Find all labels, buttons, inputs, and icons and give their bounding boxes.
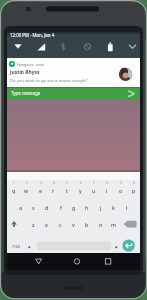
button[interactable]: ?123 (8, 242, 23, 250)
button[interactable]: u (87, 185, 100, 195)
staticText: 5 (66, 181, 68, 185)
staticText: 6 (80, 181, 82, 185)
staticText: 9 (120, 181, 122, 185)
button[interactable]: s (27, 202, 40, 212)
staticText: n (99, 221, 103, 228)
button[interactable]: q (7, 185, 20, 195)
button[interactable]: k (107, 202, 120, 212)
staticText: w (24, 187, 29, 194)
staticText: j (100, 204, 102, 211)
button[interactable] (122, 239, 135, 252)
button[interactable]: f (54, 202, 67, 212)
button[interactable]: l (120, 202, 133, 212)
button[interactable] (7, 58, 140, 87)
staticText: p (132, 187, 136, 194)
button[interactable]: j (94, 202, 107, 212)
staticText: 12:00 PM · Mon, Jan 4 (10, 32, 55, 38)
button[interactable]: i (100, 185, 113, 195)
staticText: g (72, 204, 76, 211)
staticText: y (79, 187, 82, 194)
staticText: 3 (40, 181, 42, 185)
button[interactable]: v (67, 219, 80, 229)
staticText: l (126, 204, 128, 211)
button[interactable]: o (114, 185, 127, 195)
button[interactable] (69, 255, 84, 268)
button[interactable] (7, 87, 140, 100)
button[interactable]: d (40, 202, 53, 212)
staticText: s (32, 204, 35, 211)
button[interactable]: p (127, 185, 140, 195)
staticText: z (32, 221, 35, 228)
staticText: Hangouts · now ˅ (17, 62, 46, 67)
button[interactable]: t (60, 185, 73, 195)
button[interactable]: m (107, 219, 120, 229)
button[interactable]: x (40, 219, 53, 229)
button[interactable]: e (34, 185, 47, 195)
staticText: 4 (53, 181, 55, 185)
button[interactable]: y (74, 185, 87, 195)
staticText: e (39, 187, 42, 194)
staticText: Justin Rhyss (10, 69, 40, 76)
staticText: 7 (93, 181, 95, 185)
staticText: 1 (13, 181, 15, 185)
button[interactable]: r (47, 185, 60, 195)
button[interactable]: b (80, 219, 93, 229)
button[interactable] (100, 255, 115, 268)
staticText: 8 (106, 181, 108, 185)
staticText: d (45, 204, 49, 211)
button[interactable]: a (14, 202, 27, 212)
staticText: v (72, 221, 75, 228)
button[interactable]: c (54, 219, 67, 229)
button[interactable]: g (67, 202, 80, 212)
staticText: ?123 (12, 244, 20, 249)
staticText: t (66, 187, 68, 194)
staticText: q (12, 187, 16, 194)
staticText: Type message (11, 90, 41, 96)
staticText: x (45, 221, 48, 228)
button[interactable]: z (27, 219, 40, 229)
staticText: f (60, 204, 62, 211)
staticText: o (119, 187, 123, 194)
staticText: Do you want to go see a movie tonight? (10, 78, 88, 84)
staticText: k (112, 204, 115, 211)
button[interactable]: w (20, 185, 33, 195)
staticText: u (92, 187, 96, 194)
staticText: r (52, 187, 55, 194)
staticText: i (106, 187, 108, 194)
staticText: b (85, 221, 89, 228)
button[interactable]: n (94, 219, 107, 229)
button[interactable]: h (80, 202, 93, 212)
staticText: 2 (26, 181, 28, 185)
staticText: c (59, 221, 62, 228)
button[interactable] (31, 255, 46, 268)
staticText: m (111, 221, 116, 228)
staticText: h (85, 204, 89, 211)
staticText: a (19, 204, 22, 211)
staticText: 0 (133, 181, 135, 185)
